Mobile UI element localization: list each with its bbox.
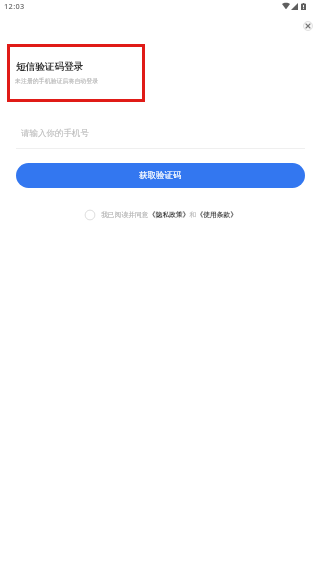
button[interactable]: Close: [298, 16, 318, 36]
staticText: 12:03: [4, 1, 25, 11]
other: Battery low: [301, 3, 306, 10]
staticText: 获取验证码: [139, 170, 182, 181]
button[interactable]: 获取验证码: [16, 163, 305, 188]
other: Wi-Fi: [282, 3, 290, 9]
other: Cellular signal: [291, 3, 298, 10]
button[interactable]: 我已阅读并同意《隐私政策》和《使用条款》: [101, 210, 237, 219]
staticText: 未注册的手机验证后将自动登录: [15, 77, 99, 84]
staticText: 短信验证码登录: [16, 61, 84, 73]
button[interactable]: Phone number input: [16, 122, 305, 149]
button[interactable]: Agree to terms checkbox: [84, 209, 96, 221]
staticText: 请输入你的手机号: [21, 128, 89, 139]
